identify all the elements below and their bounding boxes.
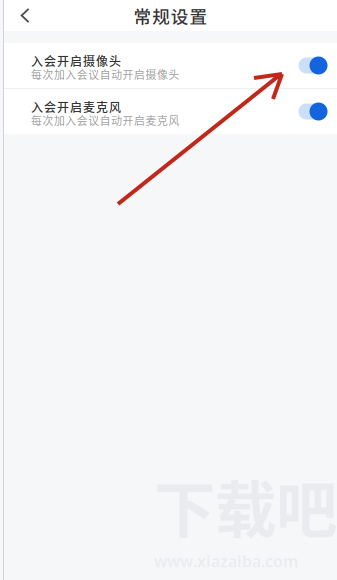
staticText: 每次加入会议自动开启麦克风	[31, 112, 179, 128]
button[interactable]: Back	[4, 0, 46, 31]
staticText: 入会开启摄像头	[31, 52, 121, 69]
staticText: 下载吧	[154, 461, 337, 550]
staticText: 入会开启麦克风	[31, 98, 121, 115]
button[interactable]: 入会开启麦克风	[4, 89, 337, 134]
staticText: 常规设置	[134, 3, 207, 28]
staticText: www.xiazaiba.com	[154, 550, 298, 572]
button[interactable]: 入会开启摄像头	[4, 43, 337, 88]
staticText: 每次加入会议自动开启摄像头	[31, 66, 179, 82]
